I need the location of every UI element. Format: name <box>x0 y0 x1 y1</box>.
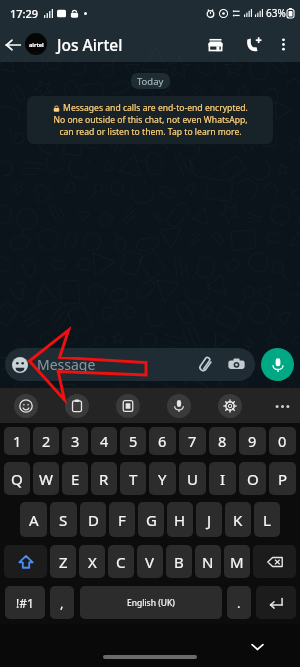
button[interactable]: Emoji <box>14 394 38 418</box>
staticText: 0 <box>278 431 287 451</box>
button[interactable]: !#1 <box>5 586 45 619</box>
button[interactable]: Stickers <box>116 394 140 418</box>
staticText: Messages and calls are end-to-end encryp… <box>63 102 248 114</box>
button[interactable]: J <box>196 502 222 537</box>
button[interactable]: H <box>167 502 193 537</box>
staticText: , <box>60 594 64 612</box>
button[interactable]: C <box>108 545 134 578</box>
staticText: 17:29 <box>10 6 39 21</box>
staticText: C <box>116 552 126 572</box>
button[interactable]: 1 <box>4 427 30 455</box>
button[interactable]: R <box>91 462 117 495</box>
button[interactable]: 7 <box>179 427 206 455</box>
button[interactable]: Enter <box>256 586 296 619</box>
button[interactable]: Backspace <box>253 545 296 578</box>
staticText: T <box>129 469 138 489</box>
button[interactable]: D <box>80 502 106 537</box>
button[interactable]: , <box>50 586 74 619</box>
button[interactable]: I <box>209 462 236 495</box>
button[interactable]: Y <box>149 462 176 495</box>
button[interactable]: Z <box>50 545 76 578</box>
staticText: Jos Airtel <box>57 34 123 55</box>
staticText: B <box>174 552 184 572</box>
staticText: Message <box>37 355 96 374</box>
button[interactable]: Call <box>238 28 270 60</box>
button[interactable]: Back <box>1 33 24 56</box>
button[interactable]: X <box>79 545 105 578</box>
staticText: 7 <box>188 431 197 451</box>
button[interactable]: L <box>254 502 280 537</box>
button[interactable]: G <box>138 502 164 537</box>
button[interactable]: T <box>120 462 146 495</box>
staticText: 8 <box>218 431 227 451</box>
button[interactable]: N <box>195 545 221 578</box>
staticText: Q <box>11 469 23 489</box>
button[interactable]: 5 <box>120 427 146 455</box>
button[interactable]: 3 <box>62 427 88 455</box>
staticText: 5 <box>129 431 138 451</box>
button[interactable]: U <box>179 462 206 495</box>
button[interactable]: Shift <box>4 545 47 578</box>
staticText: H <box>174 510 186 530</box>
button[interactable]: 8 <box>209 427 236 455</box>
staticText: Z <box>59 552 68 572</box>
staticText: 6 <box>158 431 167 451</box>
staticText: X <box>88 552 97 572</box>
staticText: V <box>145 552 155 572</box>
button[interactable]: B <box>166 545 192 578</box>
button[interactable]: 6 <box>149 427 176 455</box>
button[interactable]: Messages and calls are end-to-end encryp… <box>27 96 273 144</box>
button[interactable]: Business catalog <box>199 28 231 60</box>
button[interactable]: P <box>269 462 296 495</box>
staticText: M <box>230 552 244 572</box>
button[interactable]: F <box>109 502 135 537</box>
staticText: P <box>278 469 288 489</box>
staticText: K <box>233 510 243 530</box>
button[interactable]: V <box>137 545 163 578</box>
staticText: J <box>207 510 212 530</box>
button[interactable]: Message <box>5 348 255 381</box>
button[interactable]: Q <box>4 462 30 495</box>
button[interactable]: Settings <box>218 394 242 418</box>
button[interactable]: K <box>225 502 251 537</box>
button[interactable]: Voice message <box>261 348 294 381</box>
staticText: Y <box>158 469 167 489</box>
staticText: E <box>71 469 80 489</box>
staticText: 63% <box>266 6 286 20</box>
staticText: 4 <box>100 431 109 451</box>
staticText: F <box>118 510 126 530</box>
staticText: airtel <box>29 41 44 48</box>
staticText: O <box>247 469 259 489</box>
staticText: N <box>202 552 214 572</box>
button[interactable]: S <box>50 502 77 537</box>
staticText: No one outside of this chat, not even Wh… <box>53 114 248 126</box>
staticText: I <box>220 469 226 489</box>
button[interactable]: Clipboard <box>65 394 89 418</box>
button[interactable]: More options <box>270 31 296 57</box>
button[interactable]: Today <box>131 73 170 89</box>
button[interactable]: 9 <box>239 427 266 455</box>
button[interactable]: 0 <box>269 427 296 455</box>
button[interactable]: Hide keyboard <box>247 636 267 656</box>
button[interactable]: O <box>239 462 266 495</box>
staticText: W <box>39 469 53 489</box>
button[interactable]: English (UK) <box>80 586 222 619</box>
button[interactable]: E <box>62 462 88 495</box>
staticText: . <box>237 594 241 612</box>
staticText: !#1 <box>16 595 34 611</box>
staticText: 9 <box>248 431 257 451</box>
button[interactable]: More <box>270 394 294 418</box>
button[interactable]: 4 <box>91 427 117 455</box>
button[interactable]: . <box>227 586 251 619</box>
staticText: L <box>263 510 271 530</box>
staticText: D <box>88 510 99 530</box>
button[interactable]: Voice input <box>167 394 191 418</box>
button[interactable]: W <box>33 462 59 495</box>
button[interactable]: 2 <box>33 427 59 455</box>
button[interactable]: M <box>224 545 250 578</box>
staticText: 3 <box>71 431 80 451</box>
staticText: G <box>146 510 157 530</box>
staticText: Today <box>137 75 164 88</box>
button[interactable]: A <box>20 502 47 537</box>
staticText: can read or listen to them. Tap to learn… <box>59 126 242 138</box>
